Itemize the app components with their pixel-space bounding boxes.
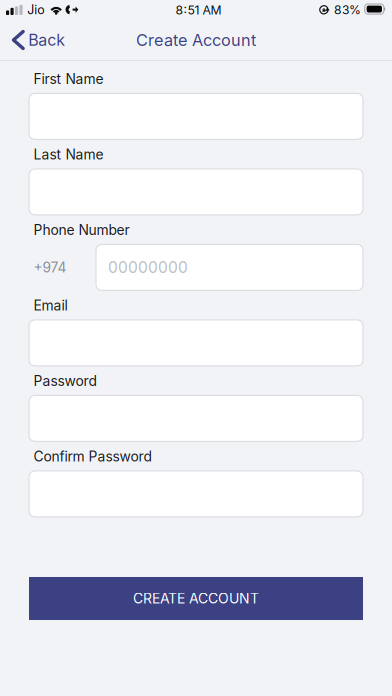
staticText: Email [34, 297, 68, 314]
staticText: Phone Number [34, 221, 130, 238]
staticText: 8:51 AM [175, 3, 221, 17]
staticText: Create Account [136, 30, 256, 50]
staticText: Jio [27, 2, 44, 17]
staticText: Confirm Password [34, 448, 152, 465]
staticText: First Name [34, 70, 104, 87]
button[interactable]: CREATE ACCOUNT [29, 577, 363, 620]
staticText: Last Name [34, 146, 104, 163]
button[interactable]: Back [0, 20, 75, 60]
staticText: Back [28, 30, 65, 50]
staticText: 83% [334, 2, 361, 17]
staticText: CREATE ACCOUNT [133, 590, 259, 607]
staticText: +974 [34, 259, 67, 276]
staticText: Password [34, 372, 97, 389]
staticText: 00000000 [108, 258, 188, 277]
